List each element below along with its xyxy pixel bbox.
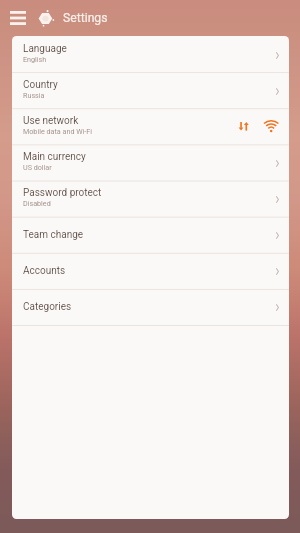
other: Mobile data — [239, 122, 249, 132]
staticText: Accounts — [23, 265, 66, 277]
staticText: English — [23, 55, 47, 63]
staticText: Mobile data and Wi-Fi — [23, 127, 93, 135]
staticText: Country — [23, 79, 58, 91]
staticText: Team change — [23, 229, 84, 241]
button[interactable]: Open navigation menu — [2, 2, 34, 34]
other: Wi-Fi — [264, 120, 279, 133]
staticText: Settings — [63, 11, 108, 25]
button[interactable]: App logo — [34, 6, 55, 29]
staticText: Main currency — [23, 151, 86, 163]
staticText: Language — [23, 43, 67, 55]
staticText: Disabled — [23, 199, 51, 207]
staticText: Categories — [23, 301, 72, 313]
button[interactable]: Use network — [12, 108, 289, 144]
staticText: Password protect — [23, 187, 102, 199]
staticText: US dollar — [23, 163, 52, 171]
button[interactable]: Categories — [12, 288, 289, 324]
button[interactable]: Country — [12, 72, 289, 108]
staticText: Russia — [23, 91, 45, 99]
button[interactable]: Password protect — [12, 180, 289, 216]
button[interactable]: Accounts — [12, 252, 289, 288]
button[interactable]: Language — [12, 36, 289, 72]
staticText: Use network — [23, 115, 79, 127]
button[interactable]: Main currency — [12, 144, 289, 180]
button[interactable]: Team change — [12, 216, 289, 252]
